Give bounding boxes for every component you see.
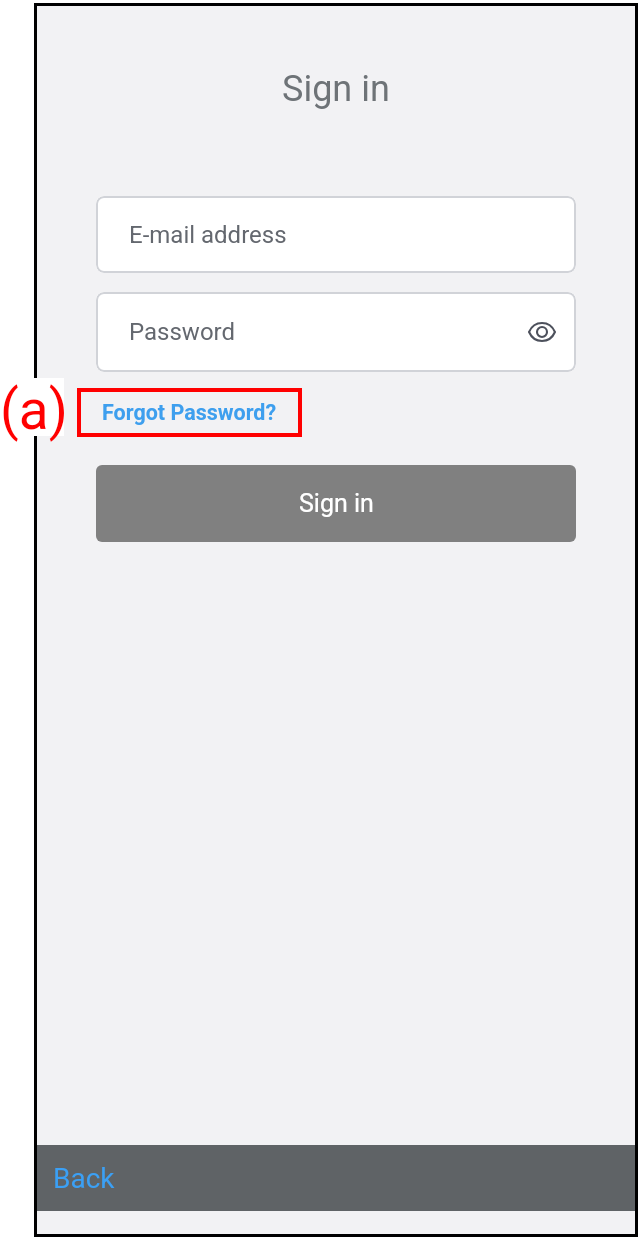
- button[interactable]: Show password: [524, 314, 560, 350]
- button[interactable]: Back: [37, 1145, 137, 1211]
- staticText: Password: [129, 318, 236, 346]
- button[interactable]: E-mail address: [96, 196, 576, 273]
- staticText: (a): [0, 378, 68, 442]
- staticText: Sign in: [282, 68, 390, 110]
- staticText: Sign in: [299, 489, 374, 518]
- button[interactable]: Password: [96, 292, 576, 372]
- staticText: E-mail address: [129, 221, 287, 249]
- staticText: Back: [53, 1162, 115, 1195]
- button[interactable]: Sign in: [96, 465, 576, 542]
- staticText: Forgot Password?: [102, 400, 277, 425]
- button[interactable]: Forgot Password?: [77, 388, 302, 437]
